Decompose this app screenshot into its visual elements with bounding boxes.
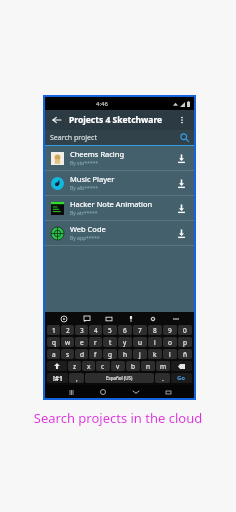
button[interactable]: c bbox=[96, 361, 110, 371]
other: Search bbox=[180, 133, 189, 142]
button[interactable]: q bbox=[47, 337, 60, 347]
staticText: g bbox=[108, 350, 112, 359]
staticText: Projects 4 Sketchware bbox=[69, 114, 163, 126]
staticText: 4:46 bbox=[96, 100, 108, 108]
staticText: By app***** bbox=[70, 235, 100, 242]
button[interactable]: 7 bbox=[133, 325, 147, 335]
staticText: x bbox=[87, 362, 91, 371]
staticText: Search projects in the cloud bbox=[0, 409, 236, 427]
button[interactable]: u bbox=[133, 337, 147, 347]
staticText: Music Player bbox=[70, 174, 115, 184]
button[interactable]: Go bbox=[171, 373, 192, 383]
button[interactable]: n bbox=[141, 361, 155, 371]
button[interactable]: Cheems Racing bbox=[45, 146, 194, 171]
button[interactable]: Keyboard tool 5 bbox=[147, 313, 158, 324]
button[interactable]: Keyboard tool 6 bbox=[170, 313, 181, 324]
button[interactable]: Backspace bbox=[171, 361, 192, 371]
button[interactable]: t bbox=[103, 337, 117, 347]
staticText: 0 bbox=[183, 326, 187, 335]
button[interactable]: o bbox=[163, 337, 177, 347]
button[interactable]: d bbox=[75, 349, 88, 359]
button[interactable]: !#1 bbox=[47, 373, 68, 383]
button[interactable]: e bbox=[75, 337, 88, 347]
staticText: 6 bbox=[123, 326, 127, 335]
button[interactable]: Hacker Note Animation bbox=[45, 196, 194, 221]
button[interactable]: w bbox=[61, 337, 74, 347]
button[interactable]: Download Web Code bbox=[173, 225, 189, 241]
staticText: By sto***** bbox=[70, 160, 99, 167]
button[interactable]: 1 bbox=[47, 325, 60, 335]
button[interactable]: x bbox=[82, 361, 95, 371]
button[interactable]: Home bbox=[97, 386, 109, 398]
staticText: Search project bbox=[50, 133, 97, 143]
staticText: 2 bbox=[66, 326, 70, 335]
button[interactable]: i bbox=[148, 337, 162, 347]
button[interactable]: Download Hacker Note Animation bbox=[173, 200, 189, 216]
button[interactable]: Back bbox=[50, 113, 64, 127]
staticText: Go bbox=[177, 374, 186, 382]
staticText: !#1 bbox=[53, 374, 63, 383]
button[interactable]: a bbox=[47, 349, 60, 359]
staticText: r bbox=[94, 338, 97, 347]
staticText: f bbox=[94, 350, 97, 359]
button[interactable]: k bbox=[148, 349, 162, 359]
staticText: w bbox=[65, 338, 71, 347]
button[interactable]: 6 bbox=[118, 325, 132, 335]
staticText: Hacker Note Animation bbox=[70, 199, 153, 209]
staticText: o bbox=[168, 338, 172, 347]
staticText: s bbox=[66, 350, 70, 359]
button[interactable]: v bbox=[111, 361, 125, 371]
staticText: v bbox=[116, 362, 120, 371]
button[interactable]: Keyboard tool 4 bbox=[125, 313, 136, 324]
button[interactable]: 0 bbox=[178, 325, 192, 335]
button[interactable]: 3 bbox=[75, 325, 88, 335]
staticText: p bbox=[183, 338, 187, 347]
button[interactable]: 5 bbox=[103, 325, 117, 335]
button[interactable]: Music Player bbox=[45, 171, 194, 196]
button[interactable]: Web Code bbox=[45, 221, 194, 246]
button[interactable]: j bbox=[133, 349, 147, 359]
button[interactable]: g bbox=[103, 349, 117, 359]
button[interactable]: Keyboard tool 2 bbox=[81, 313, 92, 324]
button[interactable]: y bbox=[118, 337, 132, 347]
button[interactable]: . bbox=[155, 373, 170, 383]
button[interactable]: Download Music Player bbox=[173, 175, 189, 191]
staticText: t bbox=[109, 338, 112, 347]
button[interactable]: b bbox=[126, 361, 140, 371]
button[interactable]: Keyboard tool 3 bbox=[103, 313, 114, 324]
staticText: Español (US) bbox=[106, 375, 133, 381]
button[interactable]: f bbox=[89, 349, 102, 359]
button[interactable]: Español (US) bbox=[85, 373, 154, 383]
staticText: 7 bbox=[138, 326, 142, 335]
staticText: 5 bbox=[108, 326, 112, 335]
button[interactable]: , bbox=[69, 373, 84, 383]
staticText: u bbox=[138, 338, 143, 347]
button[interactable]: l bbox=[163, 349, 177, 359]
button[interactable]: r bbox=[89, 337, 102, 347]
button[interactable]: ñ bbox=[178, 349, 192, 359]
button[interactable]: Download Cheems Racing bbox=[173, 150, 189, 166]
button[interactable]: Shift bbox=[47, 361, 67, 371]
button[interactable]: Recents bbox=[65, 386, 77, 398]
button[interactable]: s bbox=[61, 349, 74, 359]
button[interactable]: 2 bbox=[61, 325, 74, 335]
button[interactable]: More options bbox=[175, 113, 189, 127]
button[interactable]: 4 bbox=[89, 325, 102, 335]
button[interactable]: z bbox=[68, 361, 81, 371]
staticText: h bbox=[123, 350, 128, 359]
staticText: c bbox=[101, 362, 105, 371]
staticText: y bbox=[123, 338, 127, 347]
button[interactable]: Switch keyboard bbox=[162, 386, 174, 398]
button[interactable]: Keyboard tool 1 bbox=[58, 313, 69, 324]
button[interactable]: m bbox=[156, 361, 170, 371]
staticText: By alb***** bbox=[70, 185, 99, 192]
staticText: 9 bbox=[168, 326, 172, 335]
button[interactable]: h bbox=[118, 349, 132, 359]
button[interactable]: Search project bbox=[45, 130, 194, 145]
button[interactable]: 9 bbox=[163, 325, 177, 335]
staticText: z bbox=[73, 362, 77, 371]
button[interactable]: Hide keyboard bbox=[130, 386, 142, 398]
staticText: b bbox=[131, 362, 135, 371]
button[interactable]: 8 bbox=[148, 325, 162, 335]
button[interactable]: p bbox=[178, 337, 192, 347]
